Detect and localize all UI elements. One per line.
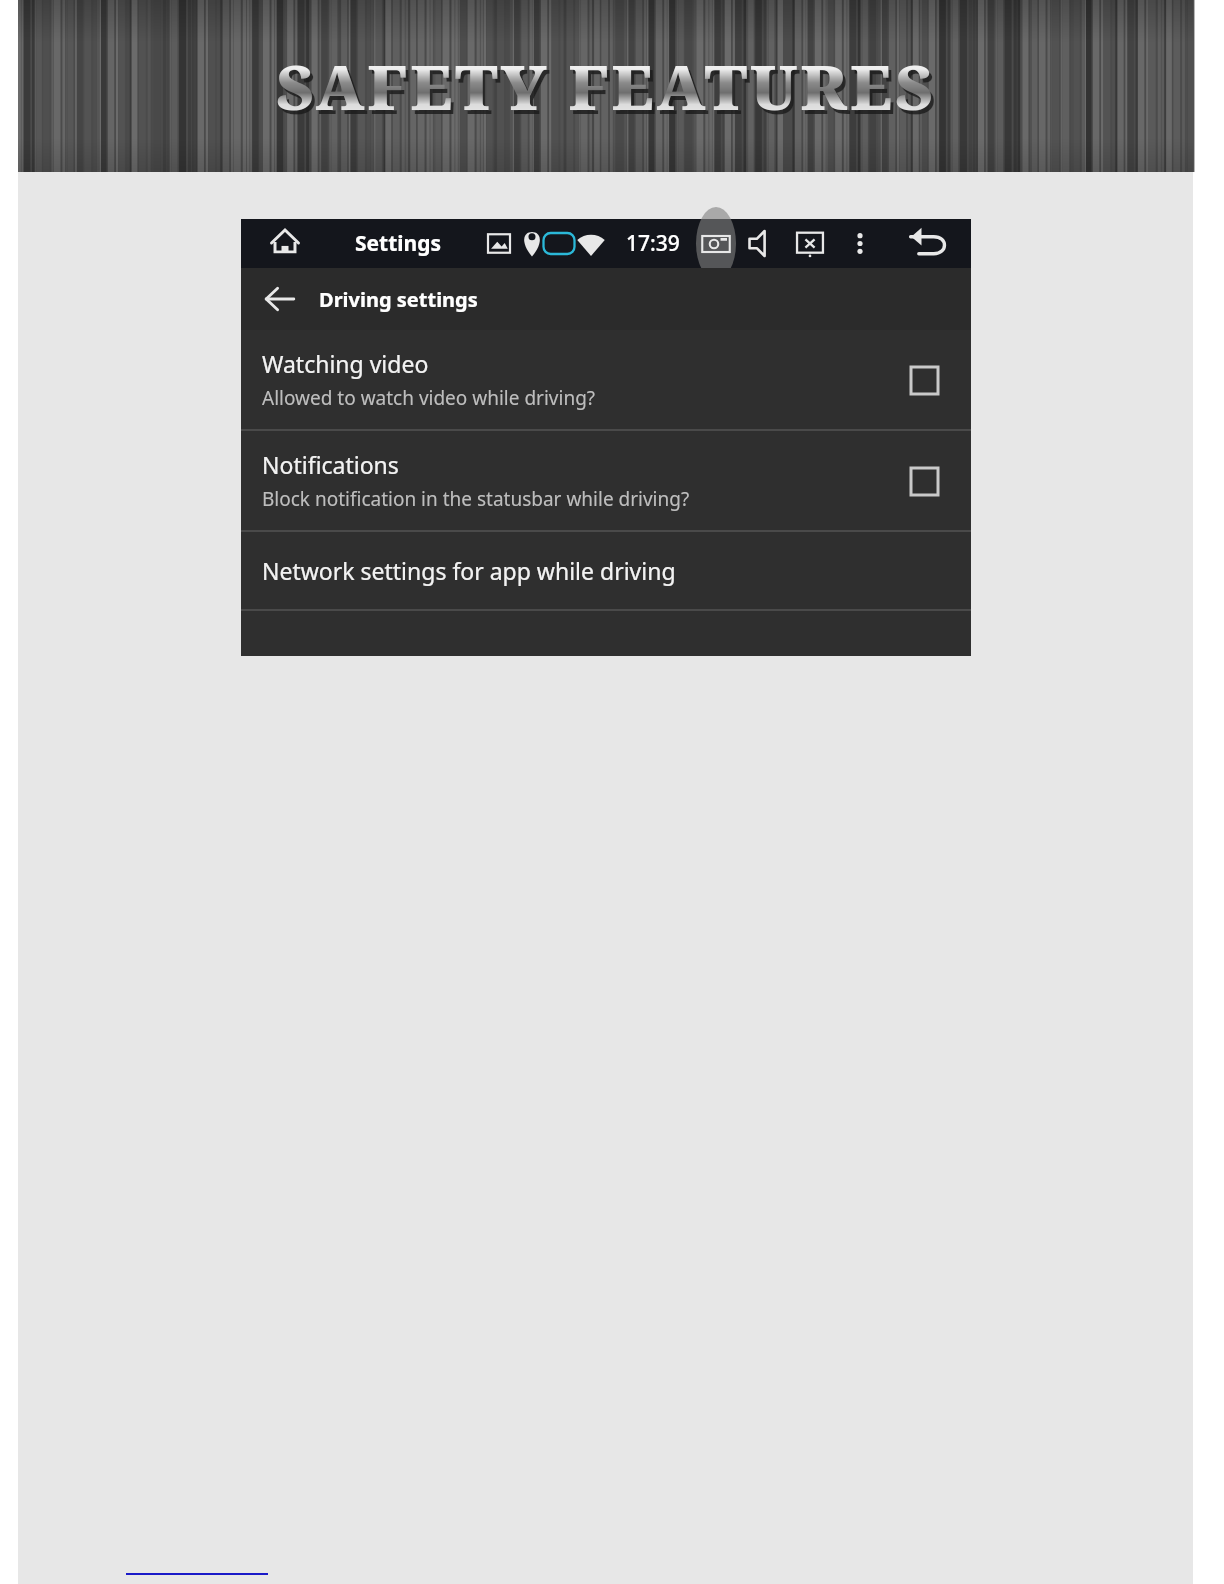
button[interactable]: Network settings for app while driving xyxy=(241,532,971,609)
staticText: Driving settings xyxy=(319,286,478,313)
staticText: Notifications xyxy=(262,449,399,480)
staticText: Network settings for app while driving xyxy=(262,555,676,586)
staticText: Watching video xyxy=(262,348,429,379)
button[interactable]: Toggle Notifications xyxy=(903,460,945,502)
staticText: Allowed to watch video while driving? xyxy=(262,385,596,411)
button[interactable]: Back xyxy=(241,268,319,330)
staticText: SAFETY FEATURES xyxy=(279,48,939,132)
staticText: Block notification in the statusbar whil… xyxy=(262,486,690,512)
button[interactable]: Notifications xyxy=(241,431,971,530)
button[interactable]: Toggle Watching video xyxy=(903,359,945,401)
staticText: SAFETY FEATURES xyxy=(276,44,936,128)
staticText: 17:39 xyxy=(626,229,680,258)
button[interactable]: Watching video xyxy=(241,330,971,429)
button[interactable]: Settings xyxy=(355,229,442,258)
